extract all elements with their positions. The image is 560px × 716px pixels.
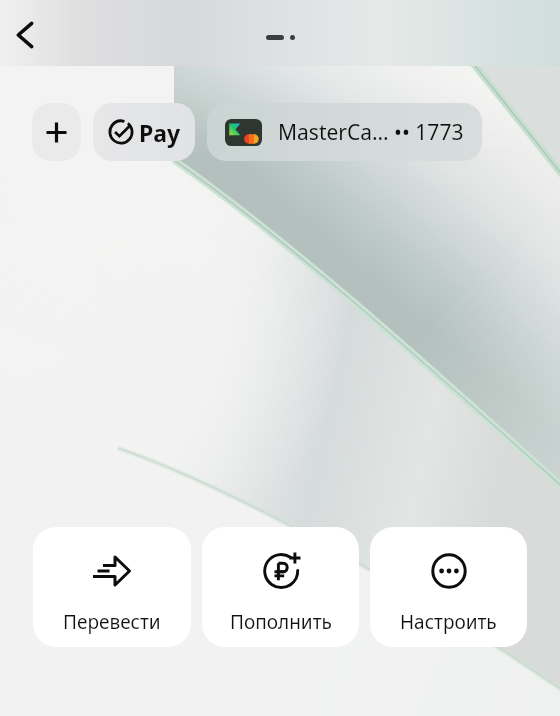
- button[interactable]: Pay: [93, 103, 195, 161]
- staticText: Перевести: [63, 609, 161, 635]
- button[interactable]: Настроить: [370, 527, 527, 647]
- button[interactable]: Пополнить: [202, 527, 359, 647]
- staticText: Pay: [139, 117, 181, 148]
- button[interactable]: Back: [1, 11, 49, 59]
- staticText: MasterCa… •• 1773: [278, 118, 464, 147]
- staticText: Настроить: [400, 609, 497, 635]
- button[interactable]: Перевести: [33, 527, 191, 647]
- staticText: Пополнить: [230, 609, 332, 635]
- button[interactable]: Add card: [32, 103, 81, 161]
- button[interactable]: MasterCa… •• 1773: [207, 103, 482, 161]
